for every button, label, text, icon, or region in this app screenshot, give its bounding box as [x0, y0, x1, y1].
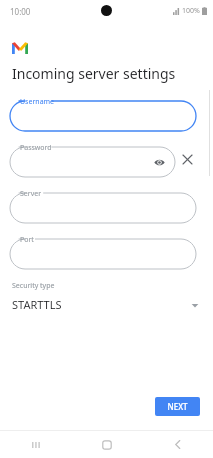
button[interactable]: Show password	[151, 154, 167, 170]
button[interactable]: Recent apps	[0, 431, 71, 458]
staticText: Username	[20, 97, 55, 107]
staticText: Security type	[12, 281, 55, 291]
button[interactable]: Port	[10, 233, 196, 269]
button[interactable]: Password	[10, 141, 175, 177]
button[interactable]: Server	[10, 187, 196, 223]
button[interactable]: Username	[10, 95, 196, 131]
button[interactable]: Security type	[0, 281, 213, 312]
button[interactable]: Back	[142, 431, 213, 458]
button[interactable]: Home	[71, 431, 142, 458]
staticText: STARTTLS	[12, 297, 62, 312]
staticText: NEXT	[167, 401, 188, 412]
button[interactable]: NEXT	[155, 397, 200, 416]
button[interactable]: Clear password	[175, 147, 199, 171]
staticText: Incoming server settings	[12, 64, 176, 83]
staticText: 10:00	[10, 6, 31, 17]
staticText: Port	[20, 235, 34, 245]
staticText: Password	[20, 143, 52, 153]
staticText: Server	[20, 189, 42, 199]
staticText: 100%	[182, 6, 200, 16]
